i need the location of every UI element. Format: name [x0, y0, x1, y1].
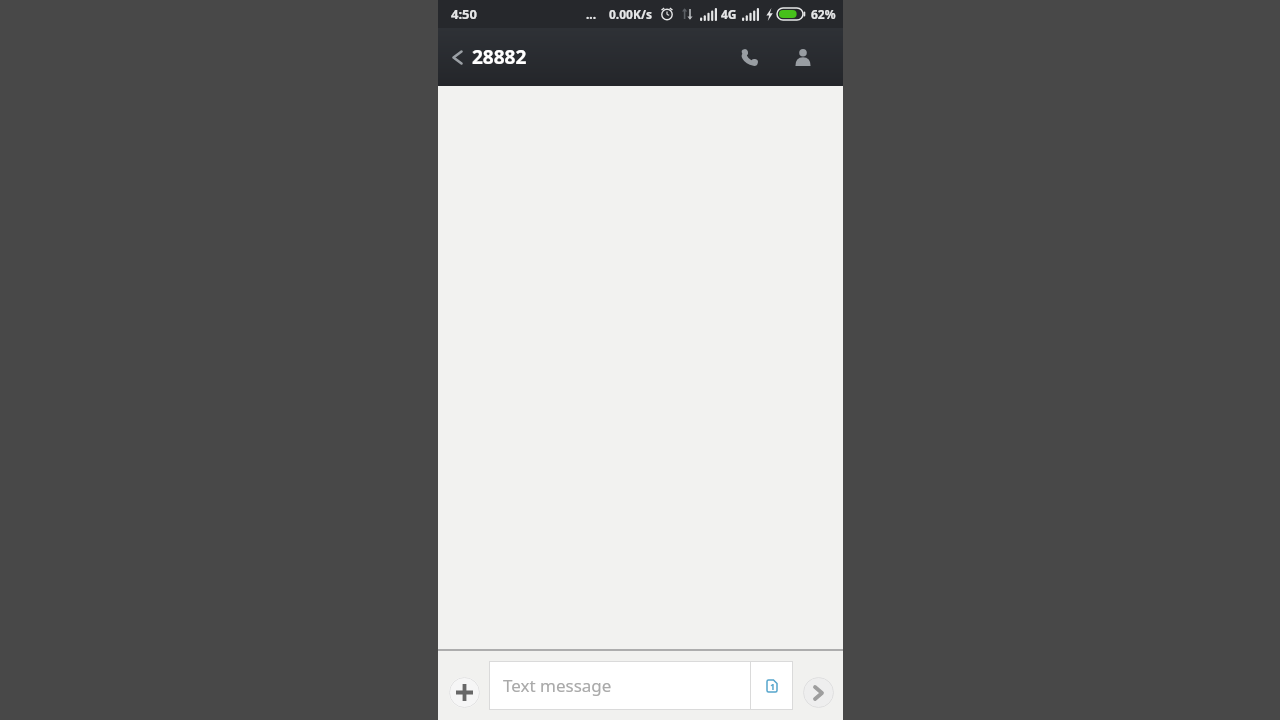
staticText: 4:50	[451, 5, 477, 23]
staticText: 62%	[811, 6, 836, 22]
staticText: 1	[770, 681, 775, 692]
button[interactable]	[783, 37, 823, 77]
button[interactable]	[449, 677, 480, 708]
staticText: 28882	[472, 44, 527, 70]
button[interactable]	[729, 37, 769, 77]
button[interactable]: 1	[751, 661, 793, 710]
button[interactable]: Text message	[489, 661, 793, 710]
staticText: 4G	[721, 6, 737, 22]
staticText: ...	[586, 6, 597, 22]
button[interactable]	[444, 44, 470, 70]
staticText: 0.00K/s	[609, 6, 652, 22]
button[interactable]	[803, 677, 834, 708]
staticText: Text message	[503, 674, 750, 697]
